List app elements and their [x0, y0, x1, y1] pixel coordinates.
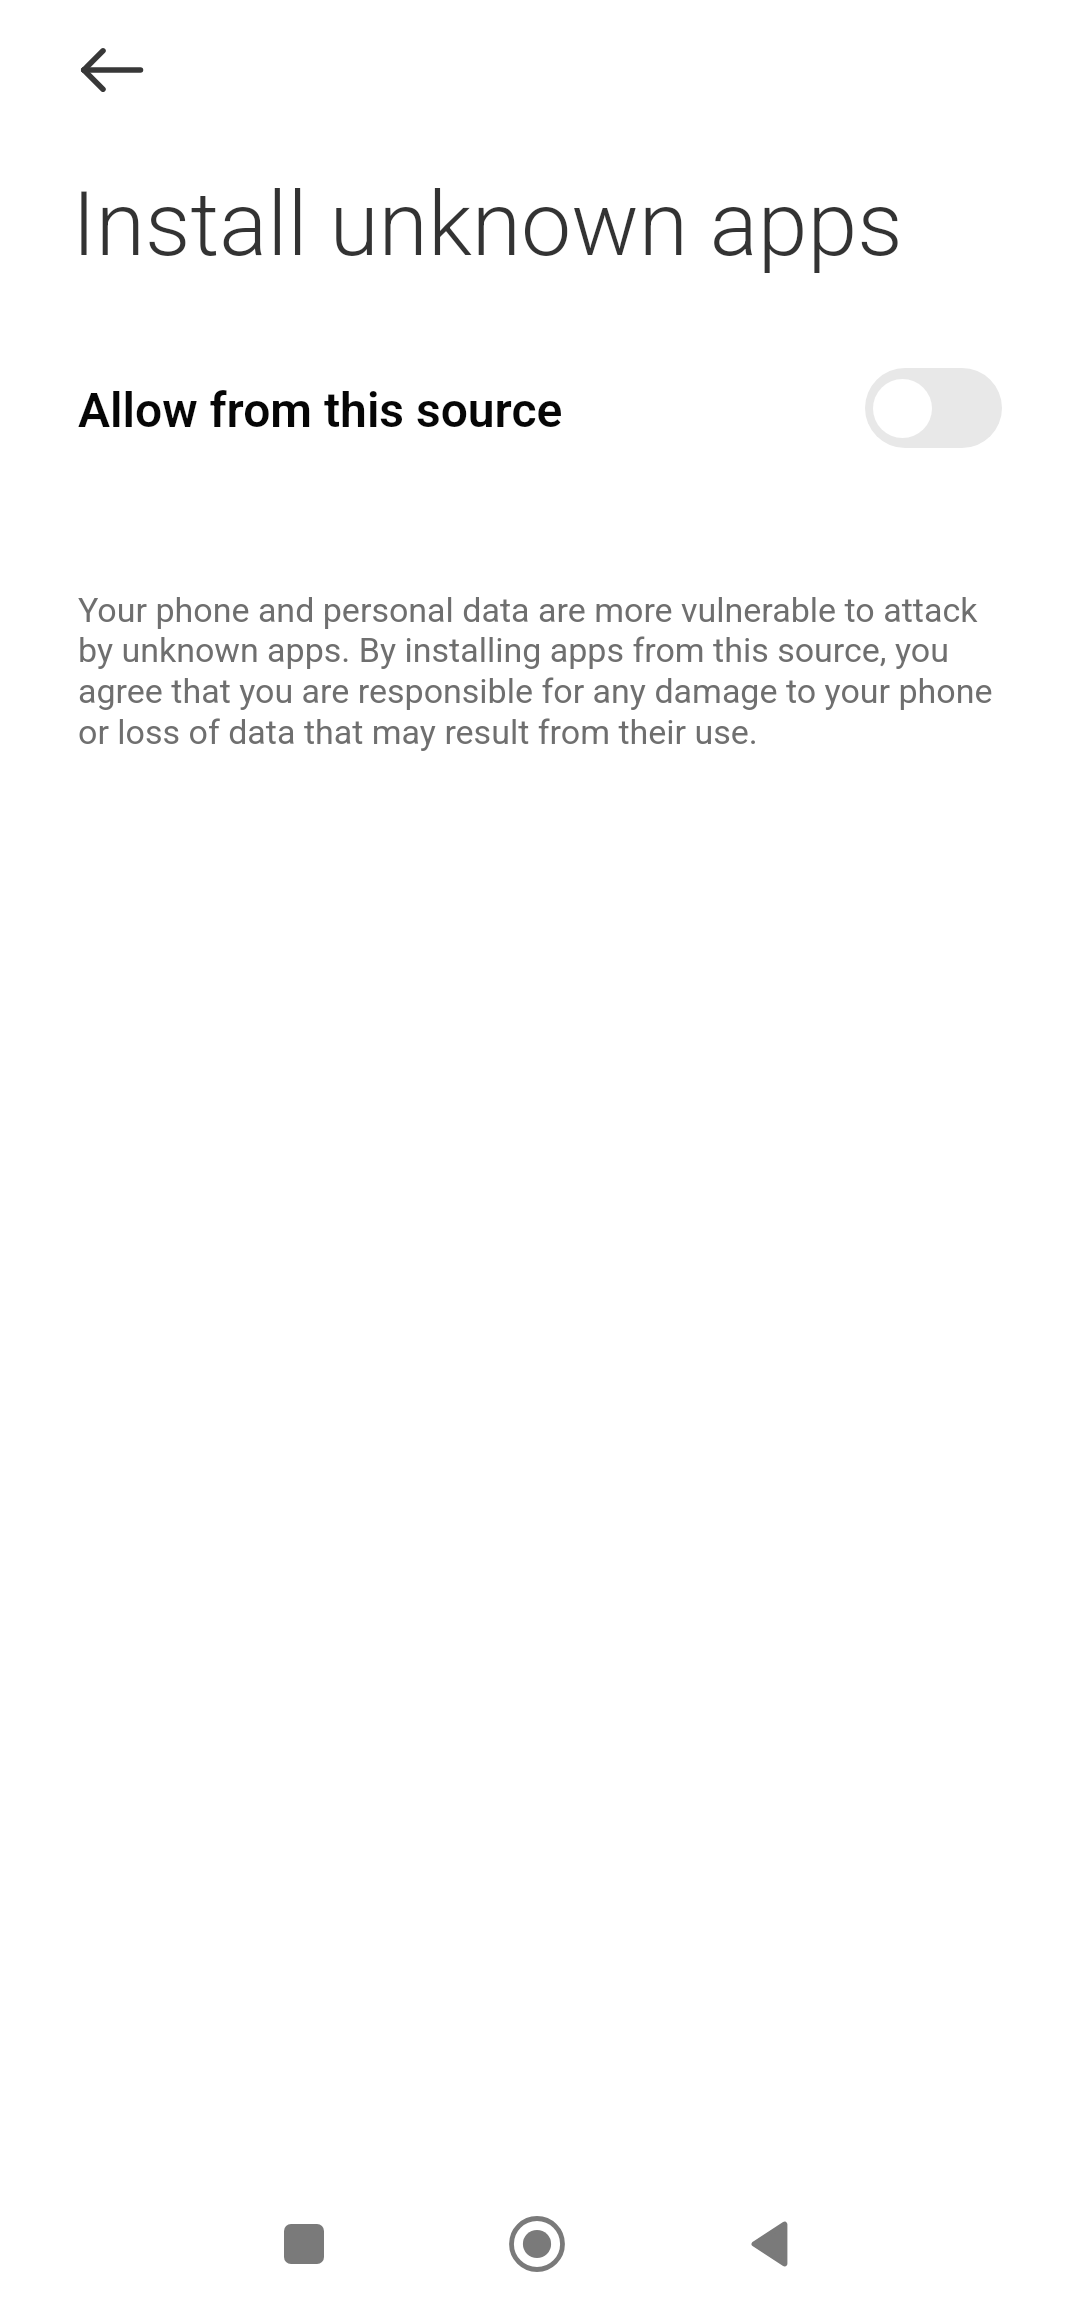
staticText: Your phone and personal data are more vu…: [78, 590, 998, 753]
button[interactable]: Allow from this source: [0, 347, 1080, 467]
button[interactable]: Home: [465, 2172, 609, 2312]
staticText: Install unknown apps: [72, 172, 903, 277]
staticText: Allow from this source: [78, 382, 563, 438]
button[interactable]: Back: [697, 2172, 841, 2312]
button[interactable]: Navigate up: [69, 26, 157, 114]
button[interactable]: Recent apps: [232, 2172, 376, 2312]
button[interactable]: Allow from this source, off: [865, 368, 1002, 448]
